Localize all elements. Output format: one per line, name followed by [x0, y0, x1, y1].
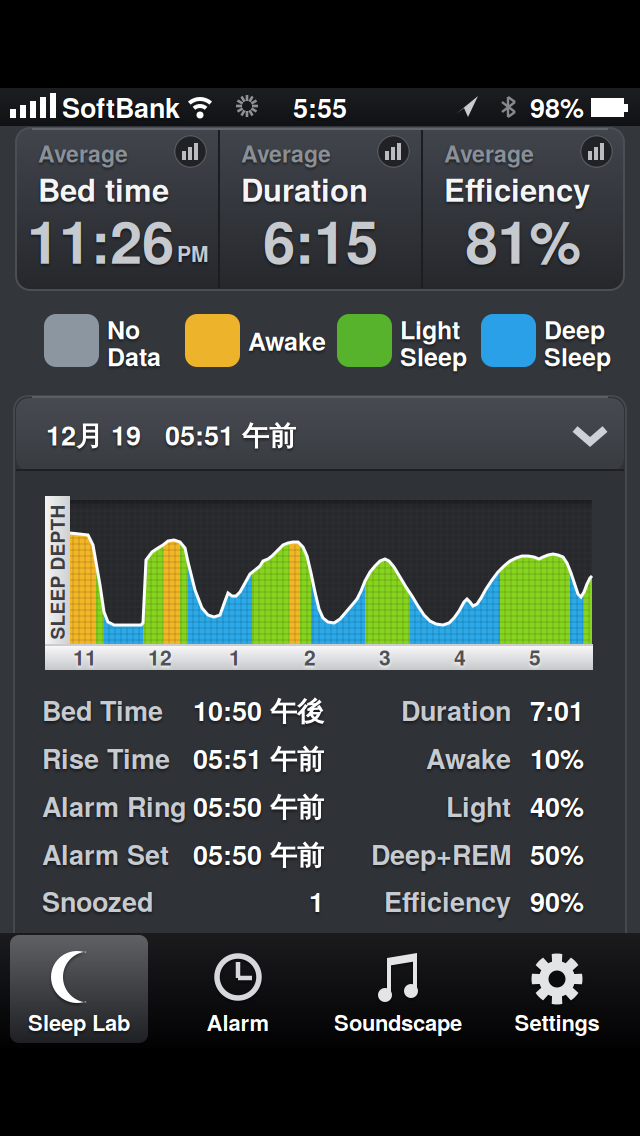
button[interactable]: Settings [480, 933, 640, 1048]
staticText: 6:15 [263, 198, 378, 282]
staticText: 3 [379, 642, 391, 672]
staticText: Alarm Ring [42, 787, 186, 825]
staticText: 1 [229, 642, 241, 672]
staticText: 10:50 午後 [193, 691, 324, 729]
staticText: PM [177, 238, 208, 269]
staticText: Sleep [400, 338, 467, 374]
staticText: 05:50 午前 [193, 787, 324, 825]
staticText: Awake [248, 323, 326, 358]
staticText: Soundscape [334, 1006, 462, 1038]
staticText: 7:01 [530, 691, 584, 729]
button[interactable]: Sleep Lab [0, 933, 160, 1048]
staticText: 11 [73, 642, 97, 672]
button[interactable]: Soundscape [320, 933, 480, 1048]
staticText: 40% [530, 787, 584, 825]
staticText: 81% [465, 198, 581, 282]
staticText: 12 [148, 642, 172, 672]
staticText: Duration [241, 167, 368, 211]
staticText: Average [241, 136, 331, 169]
staticText: SoftBank [62, 88, 180, 126]
button[interactable]: Statistics chart [377, 135, 410, 168]
button[interactable]: Alarm [160, 933, 320, 1048]
staticText: 10% [530, 739, 584, 777]
staticText: Sleep Lab [28, 1006, 130, 1038]
staticText: Light [400, 311, 460, 347]
staticText: 50% [530, 835, 584, 873]
staticText: 98% [530, 88, 584, 126]
staticText: Alarm Set [42, 835, 169, 873]
staticText: Average [38, 136, 128, 169]
staticText: 90% [530, 882, 584, 920]
staticText: 5 [529, 642, 541, 672]
staticText: Bed time [38, 167, 169, 211]
staticText: Deep [544, 311, 605, 347]
staticText: 05:51 午前 [193, 739, 324, 777]
staticText: Alarm [206, 1006, 269, 1038]
staticText: Light [446, 787, 511, 825]
staticText: Average [444, 136, 534, 169]
button[interactable]: Statistics chart [174, 135, 207, 168]
staticText: Efficiency [384, 882, 511, 920]
staticText: Bed Time [42, 691, 163, 729]
staticText: No [107, 311, 140, 347]
staticText: Sleep [544, 338, 611, 374]
staticText: 5:55 [293, 88, 347, 126]
button[interactable]: Statistics chart [580, 135, 613, 168]
staticText: 12月 19 05:51 午前 [46, 415, 296, 454]
staticText: Snoozed [42, 882, 153, 920]
staticText: Duration [401, 691, 511, 729]
staticText: Data [107, 338, 161, 374]
staticText: 1 [309, 882, 324, 920]
staticText: 11:26 [27, 198, 174, 282]
staticText: Rise Time [42, 739, 170, 777]
button[interactable]: 12月 19 05:51 午前 [16, 398, 624, 471]
staticText: Efficiency [444, 167, 590, 211]
staticText: 2 [304, 642, 316, 672]
staticText: Awake [426, 739, 511, 777]
staticText: 05:50 午前 [193, 835, 324, 873]
staticText: Deep+REM [371, 835, 511, 873]
staticText: SLEEP DEPTH [0, 558, 124, 586]
staticText: 4 [454, 642, 466, 672]
staticText: Settings [514, 1006, 599, 1038]
